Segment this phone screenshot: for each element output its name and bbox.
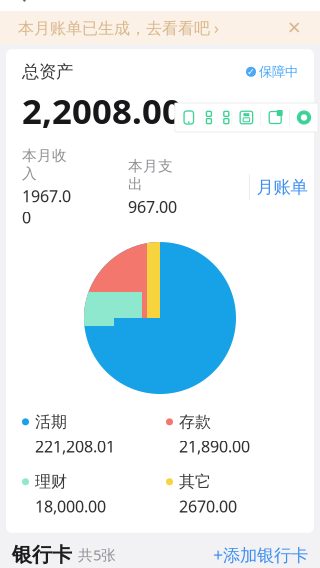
staticText: 活期 xyxy=(35,412,67,432)
staticText: 221,208.01 xyxy=(35,436,115,457)
staticText: 银行卡 xyxy=(12,542,72,567)
button[interactable]: 保存 xyxy=(232,103,260,132)
button[interactable]: +添加银行卡 xyxy=(213,537,308,568)
staticText: 月账单 xyxy=(256,177,307,198)
staticText: 本月支出 xyxy=(128,157,173,193)
staticText: 其它 xyxy=(179,472,211,492)
staticText: 理财 xyxy=(35,472,67,492)
staticText: 2670.00 xyxy=(179,496,237,517)
staticText: +添加银行卡 xyxy=(213,543,308,566)
staticText: 存款 xyxy=(179,412,211,432)
button[interactable]: 全屏 xyxy=(204,103,232,132)
staticText: 18,000.00 xyxy=(35,496,106,517)
staticText: 967.00 xyxy=(128,196,177,217)
button[interactable]: 月账单 xyxy=(250,171,314,203)
staticText: ✓ xyxy=(247,66,255,77)
button[interactable]: 设置 xyxy=(290,103,318,132)
button[interactable]: 手机 xyxy=(175,103,203,132)
staticText: 2,2008.00 xyxy=(22,87,182,133)
button[interactable]: 本月账单已生成，去看看吧 › xyxy=(0,11,320,44)
staticText: 总资产 xyxy=(22,61,73,82)
staticText: 本月收入 xyxy=(22,146,67,182)
staticText: ✕ xyxy=(287,18,302,37)
staticText: 遂宁银行 xyxy=(61,563,118,568)
staticText: 1967.00 xyxy=(22,185,71,228)
staticText: ‹ xyxy=(16,0,27,16)
staticText: 共5张 xyxy=(78,545,116,565)
staticText: 21,890.00 xyxy=(179,436,250,457)
staticText: 本月账单已生成，去看看吧 › xyxy=(18,17,219,38)
button[interactable]: 返回 xyxy=(0,0,44,11)
button[interactable]: 分享 xyxy=(261,103,289,132)
staticText: 保障中 xyxy=(259,64,298,80)
